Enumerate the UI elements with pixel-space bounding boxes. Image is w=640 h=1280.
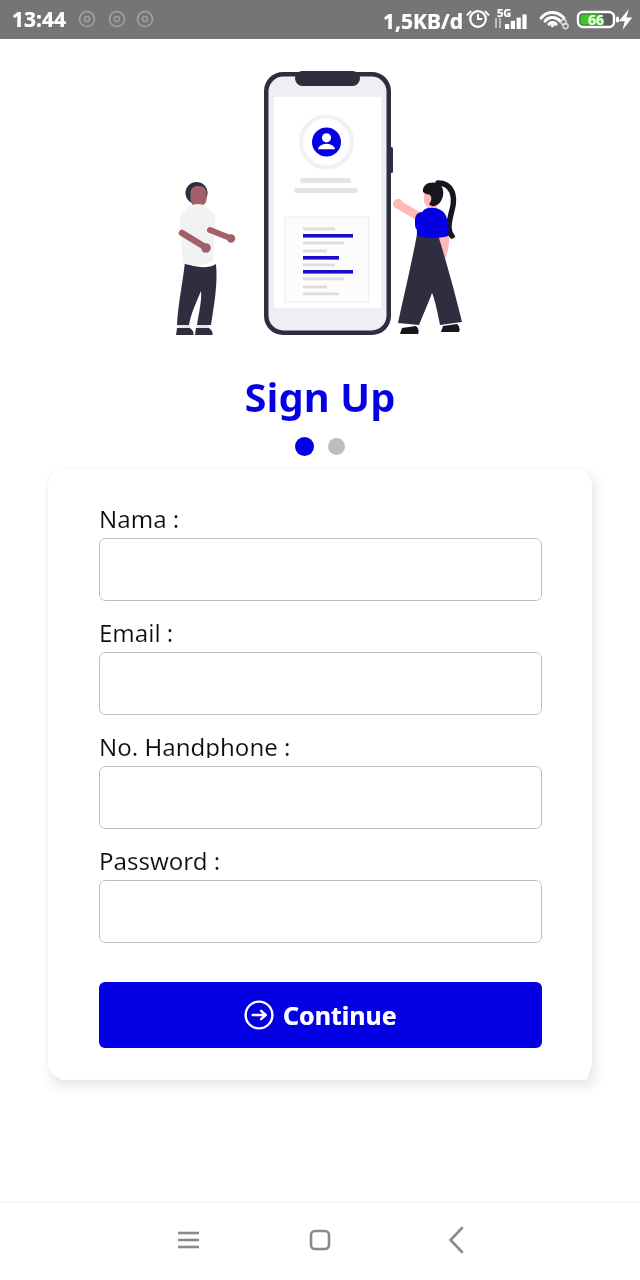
- staticText: Password :: [99, 844, 221, 872]
- button[interactable]: [99, 652, 542, 715]
- staticText: Sign Up: [0, 369, 640, 423]
- staticText: 13:44: [12, 5, 66, 34]
- staticText: Nama :: [99, 502, 180, 530]
- button[interactable]: Continue: [99, 982, 542, 1048]
- button[interactable]: [99, 880, 542, 943]
- button[interactable]: Back: [425, 1210, 485, 1270]
- button[interactable]: [99, 538, 542, 601]
- staticText: Email :: [99, 616, 174, 644]
- button[interactable]: Page 2: [328, 438, 345, 455]
- staticText: 5G: [497, 5, 512, 20]
- button[interactable]: [99, 766, 542, 829]
- button[interactable]: Recent apps: [158, 1210, 218, 1270]
- staticText: Continue: [283, 998, 397, 1032]
- button[interactable]: Home: [290, 1210, 350, 1270]
- staticText: 1,5KB/d: [383, 7, 463, 36]
- button[interactable]: Page 1: [295, 437, 314, 456]
- staticText: 66: [588, 10, 605, 29]
- staticText: No. Handphone :: [99, 730, 291, 758]
